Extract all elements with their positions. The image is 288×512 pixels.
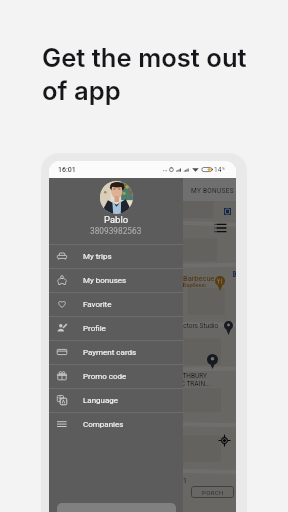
- staticText: 14: [214, 166, 222, 174]
- button[interactable]: Profile: [49, 316, 183, 340]
- staticText: Pablo: [104, 214, 129, 225]
- staticText: 38093982563: [90, 226, 142, 236]
- button[interactable]: Favorite: [49, 292, 183, 316]
- staticText: Барбекю: [183, 282, 206, 288]
- button[interactable]: My location: [219, 435, 230, 446]
- button[interactable]: PORCH: [191, 486, 234, 498]
- staticText: Payment cards: [83, 348, 137, 357]
- button[interactable]: Promo code: [49, 364, 183, 388]
- staticText: Barbecue: [183, 274, 215, 283]
- button[interactable]: List view: [214, 223, 226, 233]
- staticText: Promo code: [83, 372, 127, 381]
- staticText: 16:01: [58, 166, 76, 174]
- staticText: Actors Studio: [179, 322, 219, 330]
- button[interactable]: My bonuses: [49, 268, 183, 292]
- staticText: My trips: [83, 252, 112, 261]
- button[interactable]: Bonus card: [224, 208, 231, 215]
- button[interactable]: My trips: [49, 244, 183, 268]
- staticText: MY BONUSES: [191, 187, 234, 195]
- button[interactable]: Payment cards: [49, 340, 183, 364]
- staticText: Language: [83, 396, 119, 405]
- staticText: Profile: [83, 324, 106, 333]
- staticText: Companies: [83, 420, 124, 429]
- staticText: PORCH: [202, 489, 224, 496]
- button[interactable]: Companies: [49, 412, 183, 436]
- staticText: Get the most out of app: [42, 42, 247, 106]
- staticText: 1: [183, 477, 187, 485]
- staticText: LATHBURY RIC TRAIN...: [175, 372, 211, 388]
- staticText: Favorite: [83, 300, 112, 309]
- button[interactable]: Language: [49, 388, 183, 412]
- staticText: %: [222, 166, 225, 171]
- staticText: My bonuses: [83, 276, 127, 285]
